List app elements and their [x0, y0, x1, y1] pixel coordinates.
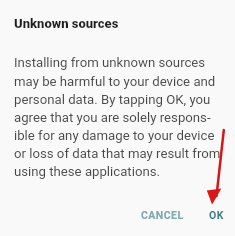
button[interactable]: CANCEL — [133, 203, 192, 227]
staticText: Unknown sources — [14, 16, 119, 31]
staticText: Installing from unknown sources may be h… — [14, 55, 221, 179]
button[interactable]: OK — [201, 203, 232, 227]
staticText: CANCEL — [141, 209, 184, 221]
staticText: OK — [209, 209, 224, 221]
